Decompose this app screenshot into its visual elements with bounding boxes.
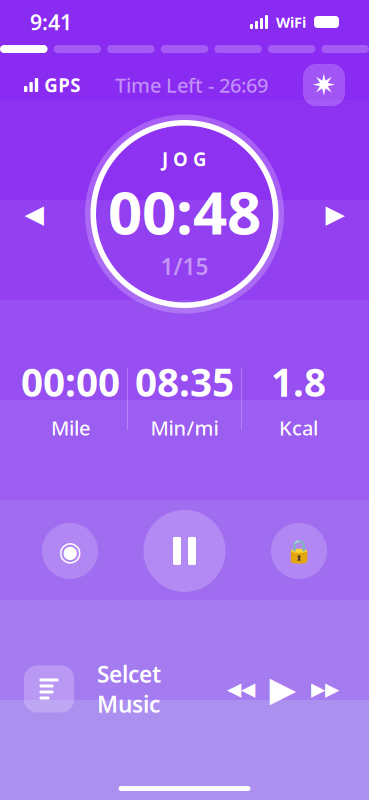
staticText: 🔒	[285, 538, 313, 564]
staticText: ◀	[24, 200, 43, 228]
staticText: ▶	[325, 200, 344, 228]
button[interactable]: Play	[261, 667, 305, 711]
staticText: Mile	[51, 414, 90, 441]
staticText: Kcal	[279, 414, 318, 441]
button[interactable]: Next interval	[313, 192, 357, 236]
button[interactable]: Lock	[271, 523, 327, 579]
staticText: J O G	[162, 147, 207, 171]
button[interactable]: Settings	[303, 64, 345, 106]
staticText: ◉	[58, 536, 81, 566]
staticText: ✷	[311, 68, 336, 102]
staticText: Time Left - 26:69	[115, 72, 268, 98]
staticText: 9:41	[30, 8, 72, 36]
staticText: Min/mi	[150, 414, 218, 441]
button[interactable]: Pause	[143, 510, 225, 592]
button[interactable]: Previous interval	[12, 192, 56, 236]
button[interactable]: Location	[42, 523, 98, 579]
staticText: GPS	[44, 73, 80, 97]
staticText: ◀◀	[227, 678, 255, 700]
staticText: ▶	[269, 669, 296, 709]
staticText: 08:35	[135, 356, 234, 407]
staticText: Selcet Music	[97, 659, 161, 719]
staticText: 1/15	[160, 251, 208, 281]
button[interactable]: Previous track	[221, 669, 261, 709]
staticText: 00:00	[21, 356, 120, 407]
staticText: WiFi	[276, 12, 306, 32]
button[interactable]: Music library	[24, 665, 74, 712]
button[interactable]: Next track	[305, 669, 345, 709]
staticText: 1.8	[271, 356, 326, 407]
staticText: 00:48	[108, 171, 261, 251]
staticText: ▶▶	[311, 678, 339, 700]
button[interactable]: Selcet Music	[74, 647, 161, 731]
